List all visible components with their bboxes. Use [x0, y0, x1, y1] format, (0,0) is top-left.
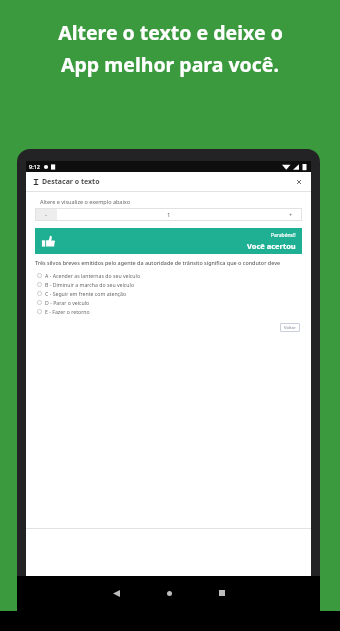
- button[interactable]: Parabéns!!: [35, 228, 302, 254]
- staticText: Altere e visualize o exemplo abaixo: [40, 198, 130, 205]
- staticText: 1: [167, 211, 171, 219]
- staticText: 9:12: [29, 163, 40, 170]
- staticText: Destacar o texto: [42, 177, 100, 187]
- button[interactable]: Destacar o texto: [26, 172, 311, 191]
- button[interactable]: Close: [293, 176, 305, 188]
- staticText: Parabéns!!: [271, 232, 296, 239]
- button[interactable]: A - Acender as lanternas do seu veículo: [26, 271, 311, 280]
- staticText: App melhor para você.: [61, 51, 279, 78]
- button[interactable]: +: [280, 208, 302, 221]
- staticText: +: [289, 211, 293, 219]
- staticText: Você acertou: [247, 241, 296, 251]
- button[interactable]: Recents: [191, 585, 253, 601]
- staticText: Três silvos breves emitidos pelo agente …: [35, 259, 281, 266]
- staticText: B - Diminuir a marcha do seu veículo: [45, 281, 135, 288]
- button[interactable]: C - Seguir em frente com atenção: [26, 289, 311, 298]
- button[interactable]: Home: [147, 585, 191, 601]
- button[interactable]: -: [35, 208, 57, 221]
- staticText: D - Parar o veículo: [45, 299, 90, 306]
- button[interactable]: Voltar: [280, 323, 300, 332]
- button[interactable]: E - Fazer o retorno: [26, 307, 311, 316]
- staticText: A - Acender as lanternas do seu veículo: [45, 272, 141, 279]
- staticText: Voltar: [284, 325, 296, 331]
- button[interactable]: D - Parar o veículo: [26, 298, 311, 307]
- staticText: C - Seguir em frente com atenção: [45, 290, 127, 297]
- staticText: Altere o texto e deixe o: [58, 19, 283, 46]
- button[interactable]: Back: [85, 585, 147, 601]
- staticText: -: [45, 211, 47, 219]
- staticText: E - Fazer o retorno: [45, 308, 90, 315]
- button[interactable]: B - Diminuir a marcha do seu veículo: [26, 280, 311, 289]
